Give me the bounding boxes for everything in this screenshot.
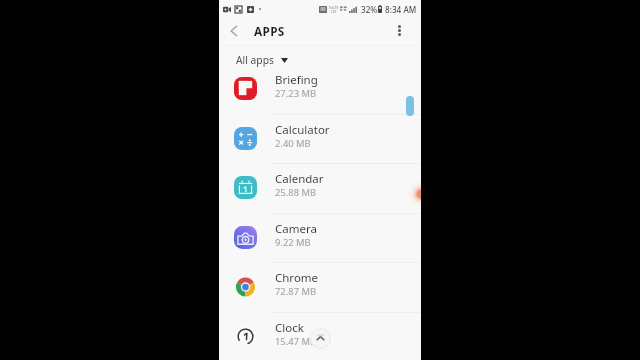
button[interactable]: Camera bbox=[219, 213, 421, 263]
button[interactable]: More options bbox=[389, 18, 414, 44]
staticText: Chrome bbox=[275, 270, 319, 286]
button[interactable]: All apps bbox=[236, 49, 288, 69]
button[interactable]: Scroll to top bbox=[310, 328, 331, 349]
staticText: Clock bbox=[275, 320, 304, 336]
staticText: 72.87 MB bbox=[275, 285, 317, 298]
button[interactable]: Briefing bbox=[219, 64, 421, 114]
button[interactable]: Calculator bbox=[219, 114, 421, 164]
button[interactable]: Calendar bbox=[219, 163, 421, 213]
staticText: LTE bbox=[331, 9, 337, 13]
button[interactable]: Navigate up bbox=[224, 18, 248, 44]
staticText: 27.23 MB bbox=[275, 87, 317, 100]
staticText: 9.22 MB bbox=[275, 236, 311, 249]
staticText: APPS bbox=[254, 23, 285, 39]
button[interactable]: Chrome bbox=[219, 262, 421, 312]
staticText: 2.40 MB bbox=[275, 137, 311, 150]
staticText: Calculator bbox=[275, 122, 330, 138]
button[interactable]: Clock bbox=[219, 312, 421, 360]
staticText: 8:34 AM bbox=[385, 4, 417, 15]
staticText: 25.88 MB bbox=[275, 186, 317, 199]
staticText: Briefing bbox=[275, 72, 318, 88]
staticText: 15.47 MB bbox=[275, 335, 317, 348]
staticText: Camera bbox=[275, 221, 317, 237]
staticText: VoLTE bbox=[329, 5, 339, 9]
staticText: All apps bbox=[236, 53, 274, 67]
staticText: 32% bbox=[361, 4, 378, 15]
staticText: Calendar bbox=[275, 171, 324, 187]
